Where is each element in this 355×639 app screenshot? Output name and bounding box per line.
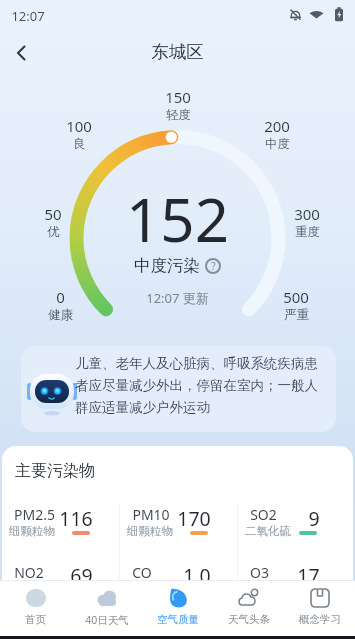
- staticText: 东城区: [151, 41, 204, 63]
- button[interactable]: [6, 37, 38, 69]
- staticText: 12:07: [11, 7, 45, 25]
- staticText: 116: [59, 505, 93, 532]
- staticText: 良: [73, 136, 86, 152]
- staticText: 概念学习: [299, 613, 341, 626]
- staticText: 优: [47, 224, 60, 240]
- staticText: 50: [44, 204, 62, 224]
- staticText: 主要污染物: [15, 461, 95, 481]
- staticText: 500: [283, 287, 309, 307]
- staticText: PM2.5: [14, 505, 55, 524]
- staticText: 150: [165, 87, 191, 107]
- staticText: 空气质量: [157, 613, 199, 626]
- staticText: 200: [264, 116, 290, 136]
- button[interactable]: 40日天气: [71, 580, 142, 638]
- staticText: 一氧化碳: [127, 582, 173, 596]
- button[interactable]: 天气头条: [213, 580, 284, 638]
- button[interactable]: ?: [205, 258, 221, 274]
- staticText: 12:07 更新: [146, 289, 209, 307]
- staticText: O3: [250, 563, 269, 582]
- staticText: 中度: [265, 136, 290, 152]
- staticText: CO: [132, 563, 152, 582]
- button[interactable]: 首页: [0, 580, 71, 638]
- staticText: 健康: [48, 307, 73, 323]
- staticText: PM10: [132, 505, 170, 524]
- staticText: 严重: [284, 307, 309, 323]
- staticText: 1.0: [183, 562, 211, 589]
- staticText: 臭氧: [245, 582, 268, 596]
- staticText: 152: [126, 178, 229, 260]
- staticText: 儿童、老年人及心脏病、呼吸系统疾病患 者应尽量减少外出，停留在室内；一般人 群应…: [75, 355, 325, 416]
- staticText: 40日天气: [85, 613, 129, 627]
- staticText: 300: [294, 204, 320, 224]
- staticText: 首页: [25, 613, 46, 626]
- staticText: NO2: [14, 563, 44, 582]
- staticText: ?: [211, 259, 216, 273]
- staticText: 天气头条: [228, 613, 270, 626]
- staticText: 9: [308, 505, 320, 532]
- staticText: SO2: [250, 505, 277, 524]
- staticText: 重度: [295, 224, 320, 240]
- staticText: 69: [70, 562, 93, 589]
- staticText: 170: [177, 505, 211, 532]
- staticText: 17: [297, 562, 320, 589]
- staticText: 二氧化硫: [245, 524, 291, 538]
- staticText: 0: [56, 287, 65, 307]
- button[interactable]: 儿童、老年人及心脏病、呼吸系统疾病患 者应尽量减少外出，停留在室内；一般人 群应…: [21, 346, 336, 432]
- staticText: 二氧化氮: [9, 582, 55, 596]
- button[interactable]: 概念学习: [284, 580, 355, 638]
- staticText: 100: [66, 116, 92, 136]
- staticText: 轻度: [166, 107, 191, 123]
- staticText: 细颗粒物: [9, 524, 55, 538]
- staticText: 细颗粒物: [127, 524, 173, 538]
- staticText: 中度污染: [134, 255, 200, 276]
- button[interactable]: 空气质量: [142, 580, 213, 638]
